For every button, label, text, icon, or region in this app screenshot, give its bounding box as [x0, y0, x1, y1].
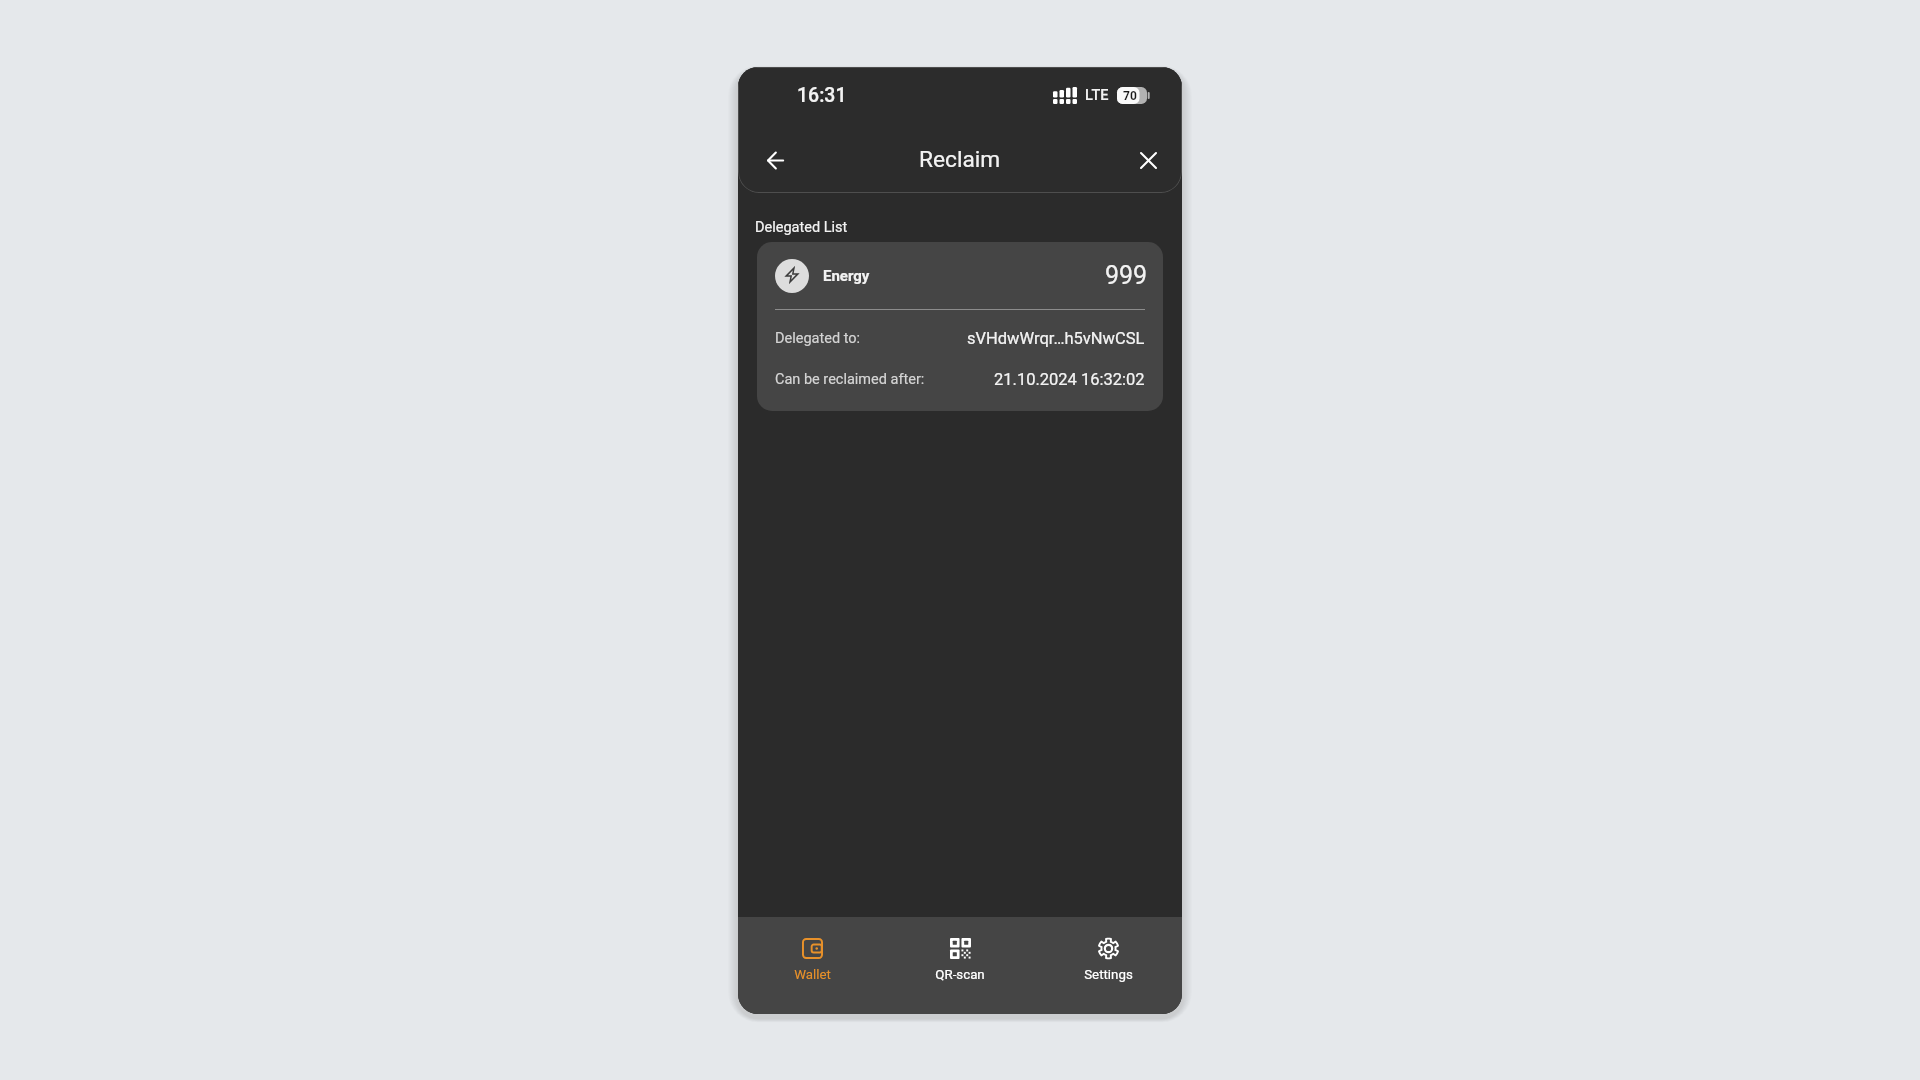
staticText: Energy — [823, 267, 870, 285]
staticText: 999 — [1105, 261, 1148, 290]
staticText: 16:31 — [797, 84, 847, 107]
staticText: sVHdwWrqr…h5vNwCSL — [967, 329, 1145, 348]
button[interactable]: Wallet — [738, 917, 886, 1014]
staticText: Reclaim — [919, 146, 1001, 173]
staticText: 70 — [1123, 89, 1137, 103]
button[interactable]: Energy — [757, 242, 1163, 411]
staticText: Wallet — [794, 967, 831, 983]
button[interactable]: Close — [1130, 142, 1166, 178]
staticText: 21.10.2024 16:32:02 — [994, 370, 1145, 389]
staticText: Delegated to: — [775, 330, 861, 347]
staticText: QR-scan — [935, 967, 985, 983]
staticText: Can be reclaimed after: — [775, 371, 925, 388]
staticText: Delegated List — [755, 219, 848, 236]
button[interactable]: Back — [757, 142, 793, 178]
staticText: LTE — [1085, 87, 1109, 104]
button[interactable]: Settings — [1034, 917, 1182, 1014]
staticText: Settings — [1084, 967, 1133, 983]
button[interactable]: QR-scan — [886, 917, 1034, 1014]
